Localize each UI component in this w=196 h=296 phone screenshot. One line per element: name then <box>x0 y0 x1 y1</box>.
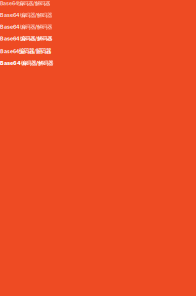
staticText: Base64编码器/解码器 <box>0 35 52 42</box>
staticText: Base64编码器/解码器 <box>0 60 53 66</box>
staticText: Base64编码器/解码器 <box>0 0 50 7</box>
staticText: Base64编码器/解码器 <box>0 12 52 18</box>
staticText: Base64编码器/解码器 <box>0 23 52 30</box>
staticText: Base64编码器/解码器 <box>0 47 51 55</box>
